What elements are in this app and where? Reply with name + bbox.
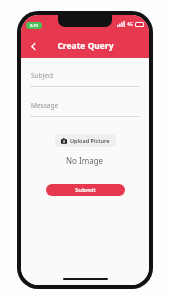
- staticText: Submit: [75, 186, 96, 194]
- button[interactable]: Back: [24, 37, 42, 55]
- staticText: 4G: [127, 21, 133, 27]
- staticText: Create Query: [57, 40, 114, 52]
- staticText: Subject: [31, 71, 54, 80]
- staticText: 5:11: [30, 23, 38, 28]
- button[interactable]: Submit: [46, 184, 125, 196]
- button[interactable]: Message: [30, 101, 140, 117]
- staticText: Upload Picture: [70, 137, 110, 144]
- button[interactable]: Subject: [30, 71, 140, 87]
- staticText: Message: [31, 101, 59, 110]
- staticText: No Image: [66, 155, 104, 166]
- button[interactable]: Upload Picture: [55, 134, 116, 147]
